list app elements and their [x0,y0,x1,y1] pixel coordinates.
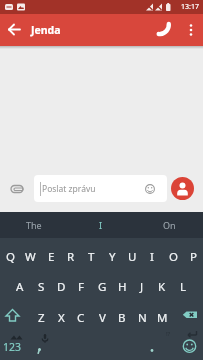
staticText: 13:17 [181,2,199,12]
staticText: A [16,279,24,295]
staticText: D [57,279,66,295]
staticText: U [128,249,137,265]
button[interactable]: W [16,246,44,268]
button[interactable]: B [108,307,136,329]
button[interactable] [171,177,194,200]
button[interactable]: V [88,307,116,329]
staticText: P [190,249,197,265]
staticText: Z [38,310,45,326]
staticText: B [118,310,126,326]
button[interactable]: A [6,276,34,298]
button[interactable]: On [135,212,203,238]
button[interactable]: J [128,276,156,298]
staticText: W [25,249,36,265]
button[interactable]: L [169,276,197,298]
button[interactable]: O [159,246,187,268]
staticText: 123 [3,340,22,354]
staticText: Poslat zprávu [42,183,96,195]
staticText: !? [166,330,171,338]
button[interactable]: P [179,246,203,268]
button[interactable] [151,14,178,46]
staticText: Q [6,249,15,265]
staticText: The [26,219,42,231]
button[interactable] [0,175,34,202]
staticText: R [67,249,75,265]
button[interactable] [175,335,203,357]
button[interactable]: 123 [0,336,26,358]
button[interactable] [178,14,203,46]
button[interactable]: Q [0,246,24,268]
staticText: S [38,279,45,295]
button[interactable]: Y [98,246,126,268]
staticText: Jenda [31,23,61,37]
button[interactable]: K [148,276,176,298]
staticText: G [98,279,107,295]
button[interactable]: R [57,246,85,268]
staticText: M [157,310,168,326]
button[interactable]: F [67,276,95,298]
staticText: F [78,279,84,295]
button[interactable]: H [108,276,136,298]
staticText: T [88,249,95,265]
staticText: H [118,279,127,295]
button[interactable]: X [47,307,75,329]
button[interactable]: Poslat zprávu [34,175,167,202]
button[interactable]: U [118,246,146,268]
staticText: E [48,249,55,265]
staticText: X [58,310,65,326]
staticText: V [99,310,106,326]
button[interactable]: I [67,212,135,238]
staticText: C [77,310,85,326]
button[interactable]: D [47,276,75,298]
staticText: I [99,219,103,231]
button[interactable]: E [37,246,65,268]
staticText: N [138,310,147,326]
button[interactable]: C [67,307,95,329]
button[interactable] [179,305,201,325]
button[interactable]: T [77,246,105,268]
staticText: On [163,219,176,231]
staticText: L [180,279,187,295]
button[interactable]: The [0,212,67,238]
staticText: K [158,279,166,295]
button[interactable]: N [128,307,156,329]
button[interactable]: Z [27,307,55,329]
button[interactable] [0,14,28,46]
staticText: O [169,249,178,265]
staticText: Y [109,249,116,265]
button[interactable]: G [88,276,116,298]
button[interactable] [2,305,22,325]
button[interactable]: S [27,276,55,298]
staticText: J [140,279,144,295]
button[interactable]: I [138,246,166,268]
button[interactable]: M [148,307,176,329]
staticText: I [150,249,154,265]
